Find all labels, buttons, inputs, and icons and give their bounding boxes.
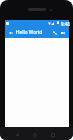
button[interactable]: Back <box>11 130 22 139</box>
staticText: 9:48 <box>61 21 70 27</box>
button[interactable]: Call <box>50 27 59 38</box>
staticText: Hello World <box>16 29 43 35</box>
button[interactable]: Recent apps <box>47 130 58 139</box>
button[interactable]: Home <box>29 130 40 139</box>
button[interactable]: Video call <box>58 27 67 38</box>
button[interactable]: Navigate up <box>6 27 15 38</box>
